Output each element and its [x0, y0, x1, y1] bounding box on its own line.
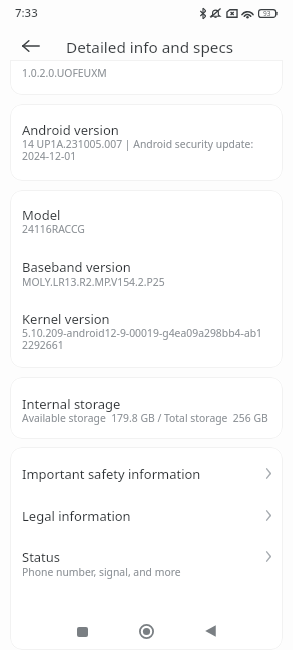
- staticText: 1.0.2.0.UOFEUXM: [22, 66, 107, 80]
- staticText: Model: [22, 206, 61, 224]
- staticText: Android version: [22, 121, 119, 139]
- button[interactable]: Back: [195, 616, 225, 646]
- staticText: 2024-12-01: [22, 149, 77, 163]
- staticText: 2292661: [22, 338, 64, 352]
- staticText: Detailed info and specs: [66, 37, 234, 58]
- button[interactable]: Legal information: [10, 489, 283, 531]
- staticText: 5.10.209-android12-9-00019-g4ea09a298bb4…: [22, 326, 263, 340]
- staticText: 24116RACCG: [22, 222, 85, 236]
- button[interactable]: Recents: [67, 616, 98, 647]
- staticText: 14 UP1A.231005.007 | Android security up…: [22, 137, 254, 151]
- staticText: 93: [263, 9, 271, 18]
- staticText: Baseband version: [22, 258, 131, 276]
- staticText: Internal storage: [22, 395, 121, 413]
- button[interactable]: Important safety information: [10, 447, 283, 489]
- button[interactable]: Status: [10, 531, 283, 591]
- staticText: Kernel version: [22, 310, 110, 328]
- staticText: Phone number, signal, and more: [22, 565, 181, 579]
- button[interactable]: Home: [131, 616, 161, 646]
- staticText: Status: [22, 548, 61, 566]
- staticText: Available storage 179.8 GB / Total stora…: [22, 411, 268, 425]
- staticText: Important safety information: [22, 465, 201, 483]
- staticText: 7:33: [15, 5, 38, 21]
- staticText: Legal information: [22, 507, 131, 525]
- staticText: MOLY.LR13.R2.MP.V154.2.P25: [22, 275, 165, 289]
- button[interactable]: Back: [18, 33, 44, 59]
